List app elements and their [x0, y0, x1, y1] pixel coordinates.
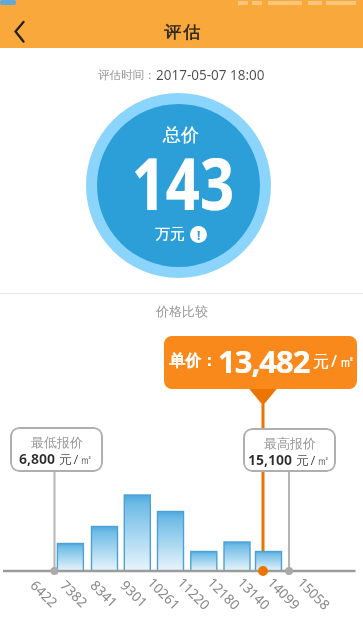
button[interactable]: 最低报价: [10, 427, 103, 472]
staticText: !: [197, 227, 201, 243]
button[interactable]: 单价：: [164, 336, 357, 389]
staticText: 价格比较: [156, 303, 208, 319]
button[interactable]: 最高报价: [243, 428, 336, 472]
staticText: 评估时间：: [98, 68, 156, 82]
staticText: 元/㎡: [296, 451, 332, 469]
staticText: 评估: [163, 22, 201, 43]
staticText: 元/㎡: [313, 350, 357, 372]
staticText: 单价：: [169, 351, 217, 371]
staticText: 总价: [163, 124, 199, 147]
staticText: 6,800: [19, 449, 56, 468]
staticText: 最高报价: [264, 435, 316, 451]
staticText: 13,482: [218, 340, 310, 382]
staticText: 143: [132, 134, 234, 231]
staticText: 万元: [155, 225, 185, 244]
button[interactable]: [0, 7, 40, 48]
staticText: 元/㎡: [59, 450, 95, 468]
staticText: 最低报价: [31, 434, 83, 450]
staticText: 15,100: [248, 450, 293, 469]
staticText: 2017-05-07 18:00: [156, 66, 265, 84]
